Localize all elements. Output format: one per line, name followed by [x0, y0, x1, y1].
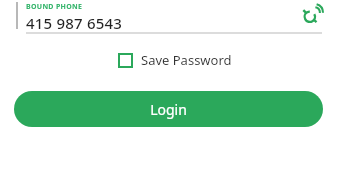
staticText: 415 987 6543 — [26, 13, 123, 33]
staticText: Save Password — [141, 51, 232, 69]
button[interactable]: BOUND PHONE — [26, 2, 123, 33]
button[interactable]: Call bound phone — [300, 3, 324, 27]
staticText: Login — [150, 100, 187, 119]
button[interactable]: Login — [14, 91, 323, 127]
button[interactable]: Save Password — [116, 49, 234, 71]
staticText: BOUND PHONE — [26, 2, 83, 12]
